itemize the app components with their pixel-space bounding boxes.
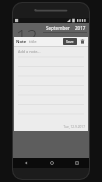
button[interactable]: Delete note (79, 38, 86, 45)
staticText: 12 (16, 23, 38, 43)
staticText: Tue, 12.9.2017 (63, 125, 85, 129)
staticText: 2017 (75, 25, 86, 31)
button[interactable]: Back (13, 158, 39, 168)
button[interactable]: Home (39, 158, 64, 168)
button[interactable]: Save (63, 38, 77, 45)
button[interactable]: Recent apps (64, 158, 89, 168)
staticText: title (29, 39, 37, 45)
staticText: Note (16, 39, 27, 45)
staticText: Add a note... (18, 49, 41, 54)
staticText: September (46, 25, 70, 31)
staticText: Save (66, 39, 74, 44)
